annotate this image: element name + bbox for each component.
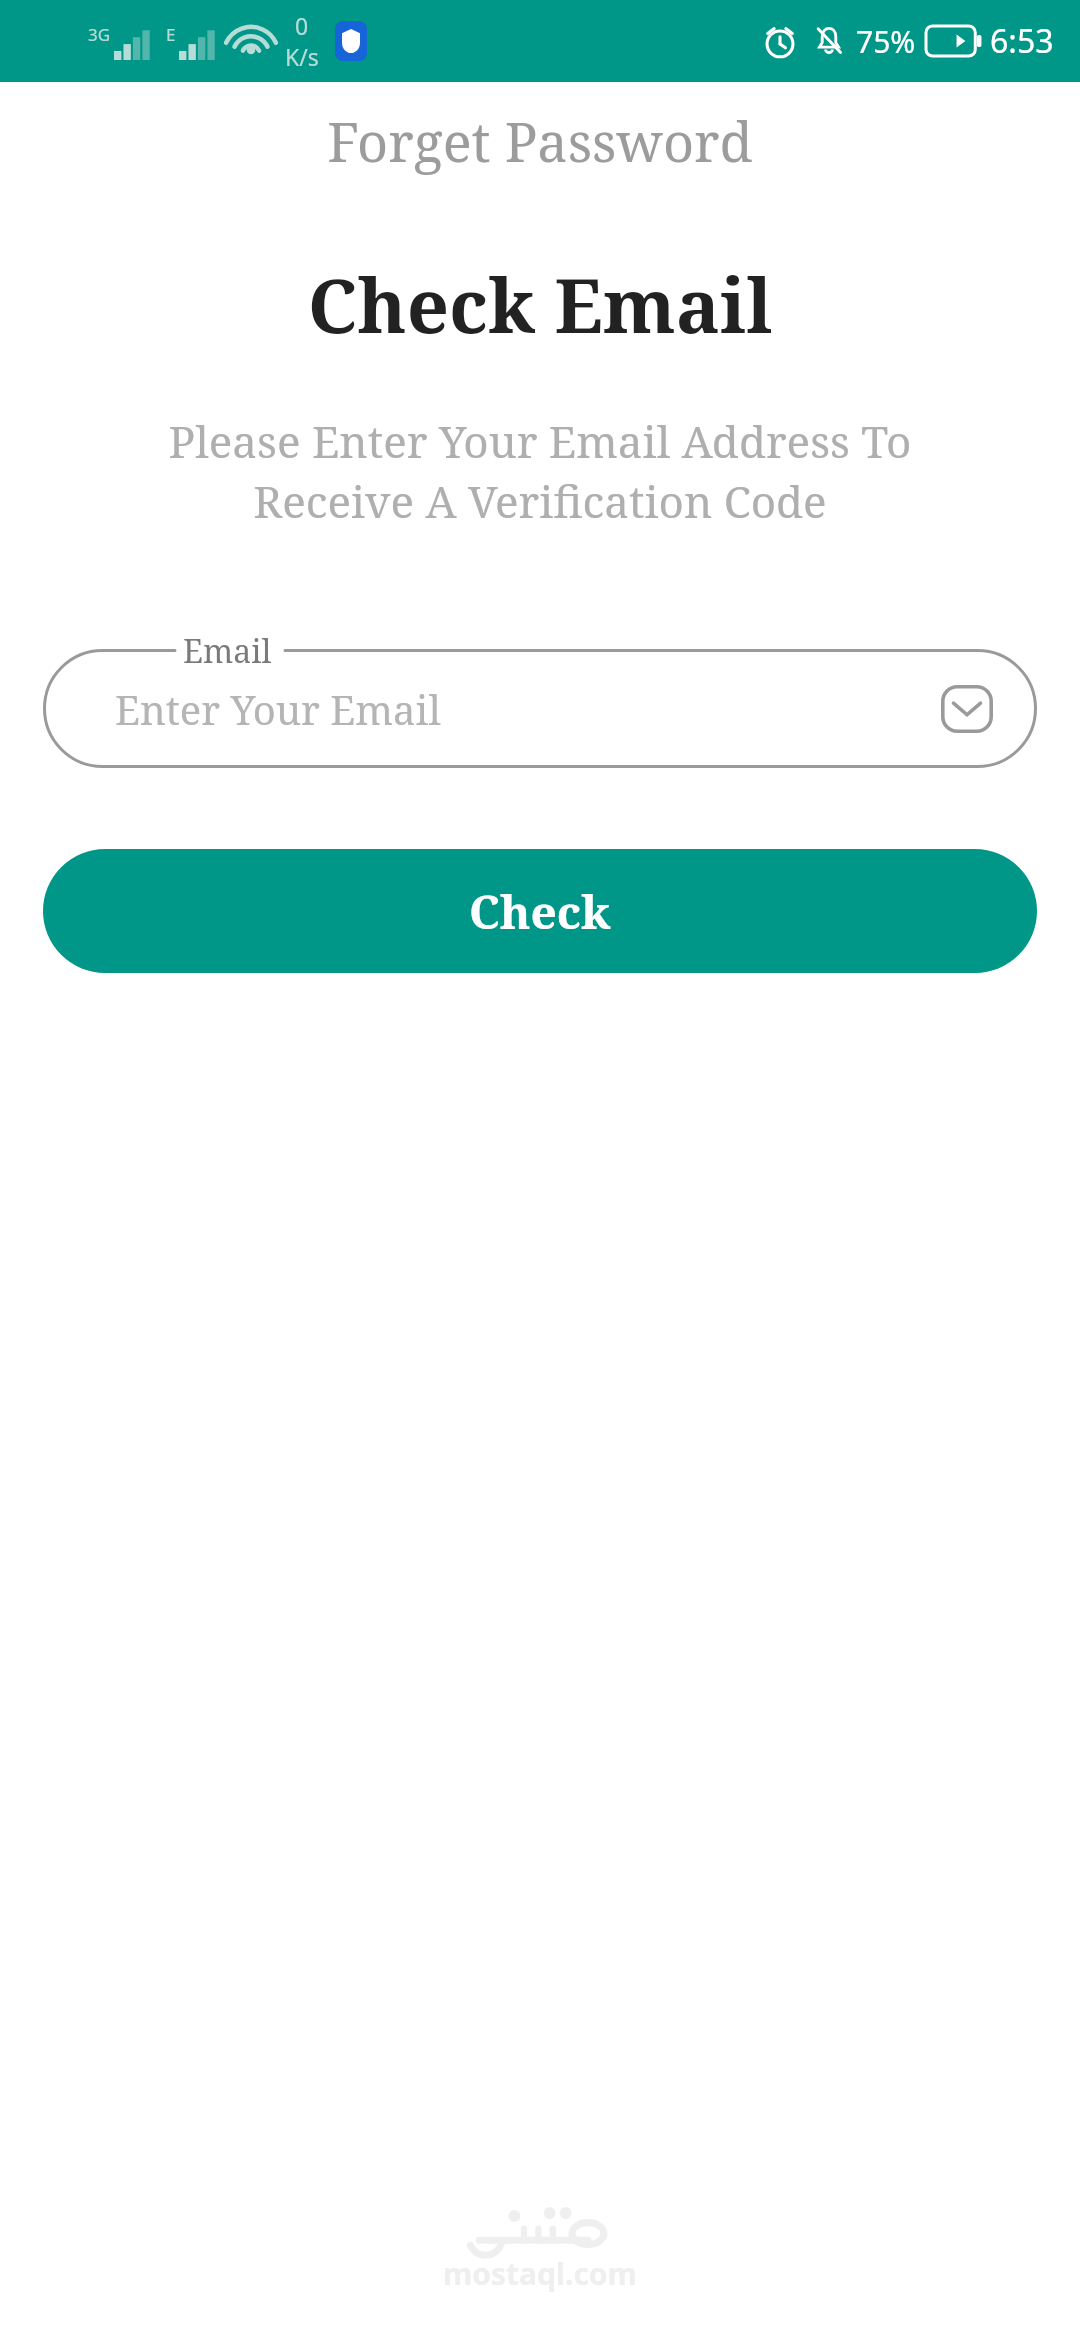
staticText: Please Enter Your Email Address To Recei… <box>0 411 1080 531</box>
staticText: 75% <box>856 21 916 62</box>
button[interactable]: Email <box>43 649 1037 768</box>
staticText: 0 <box>295 10 309 41</box>
staticText: mostaql.com <box>443 2253 637 2294</box>
staticText: 6:53 <box>990 19 1054 63</box>
staticText: Email <box>183 629 272 673</box>
staticText: Enter Your Email <box>115 682 441 736</box>
staticText: K/s <box>285 41 319 72</box>
staticText: Check Email <box>0 254 1080 355</box>
staticText: 3G <box>88 23 111 46</box>
staticText: E <box>166 23 176 46</box>
staticText: Check <box>469 880 611 943</box>
staticText: Forget Password <box>0 104 1080 178</box>
button[interactable]: Email <box>939 681 995 737</box>
button[interactable]: Check <box>43 849 1037 973</box>
